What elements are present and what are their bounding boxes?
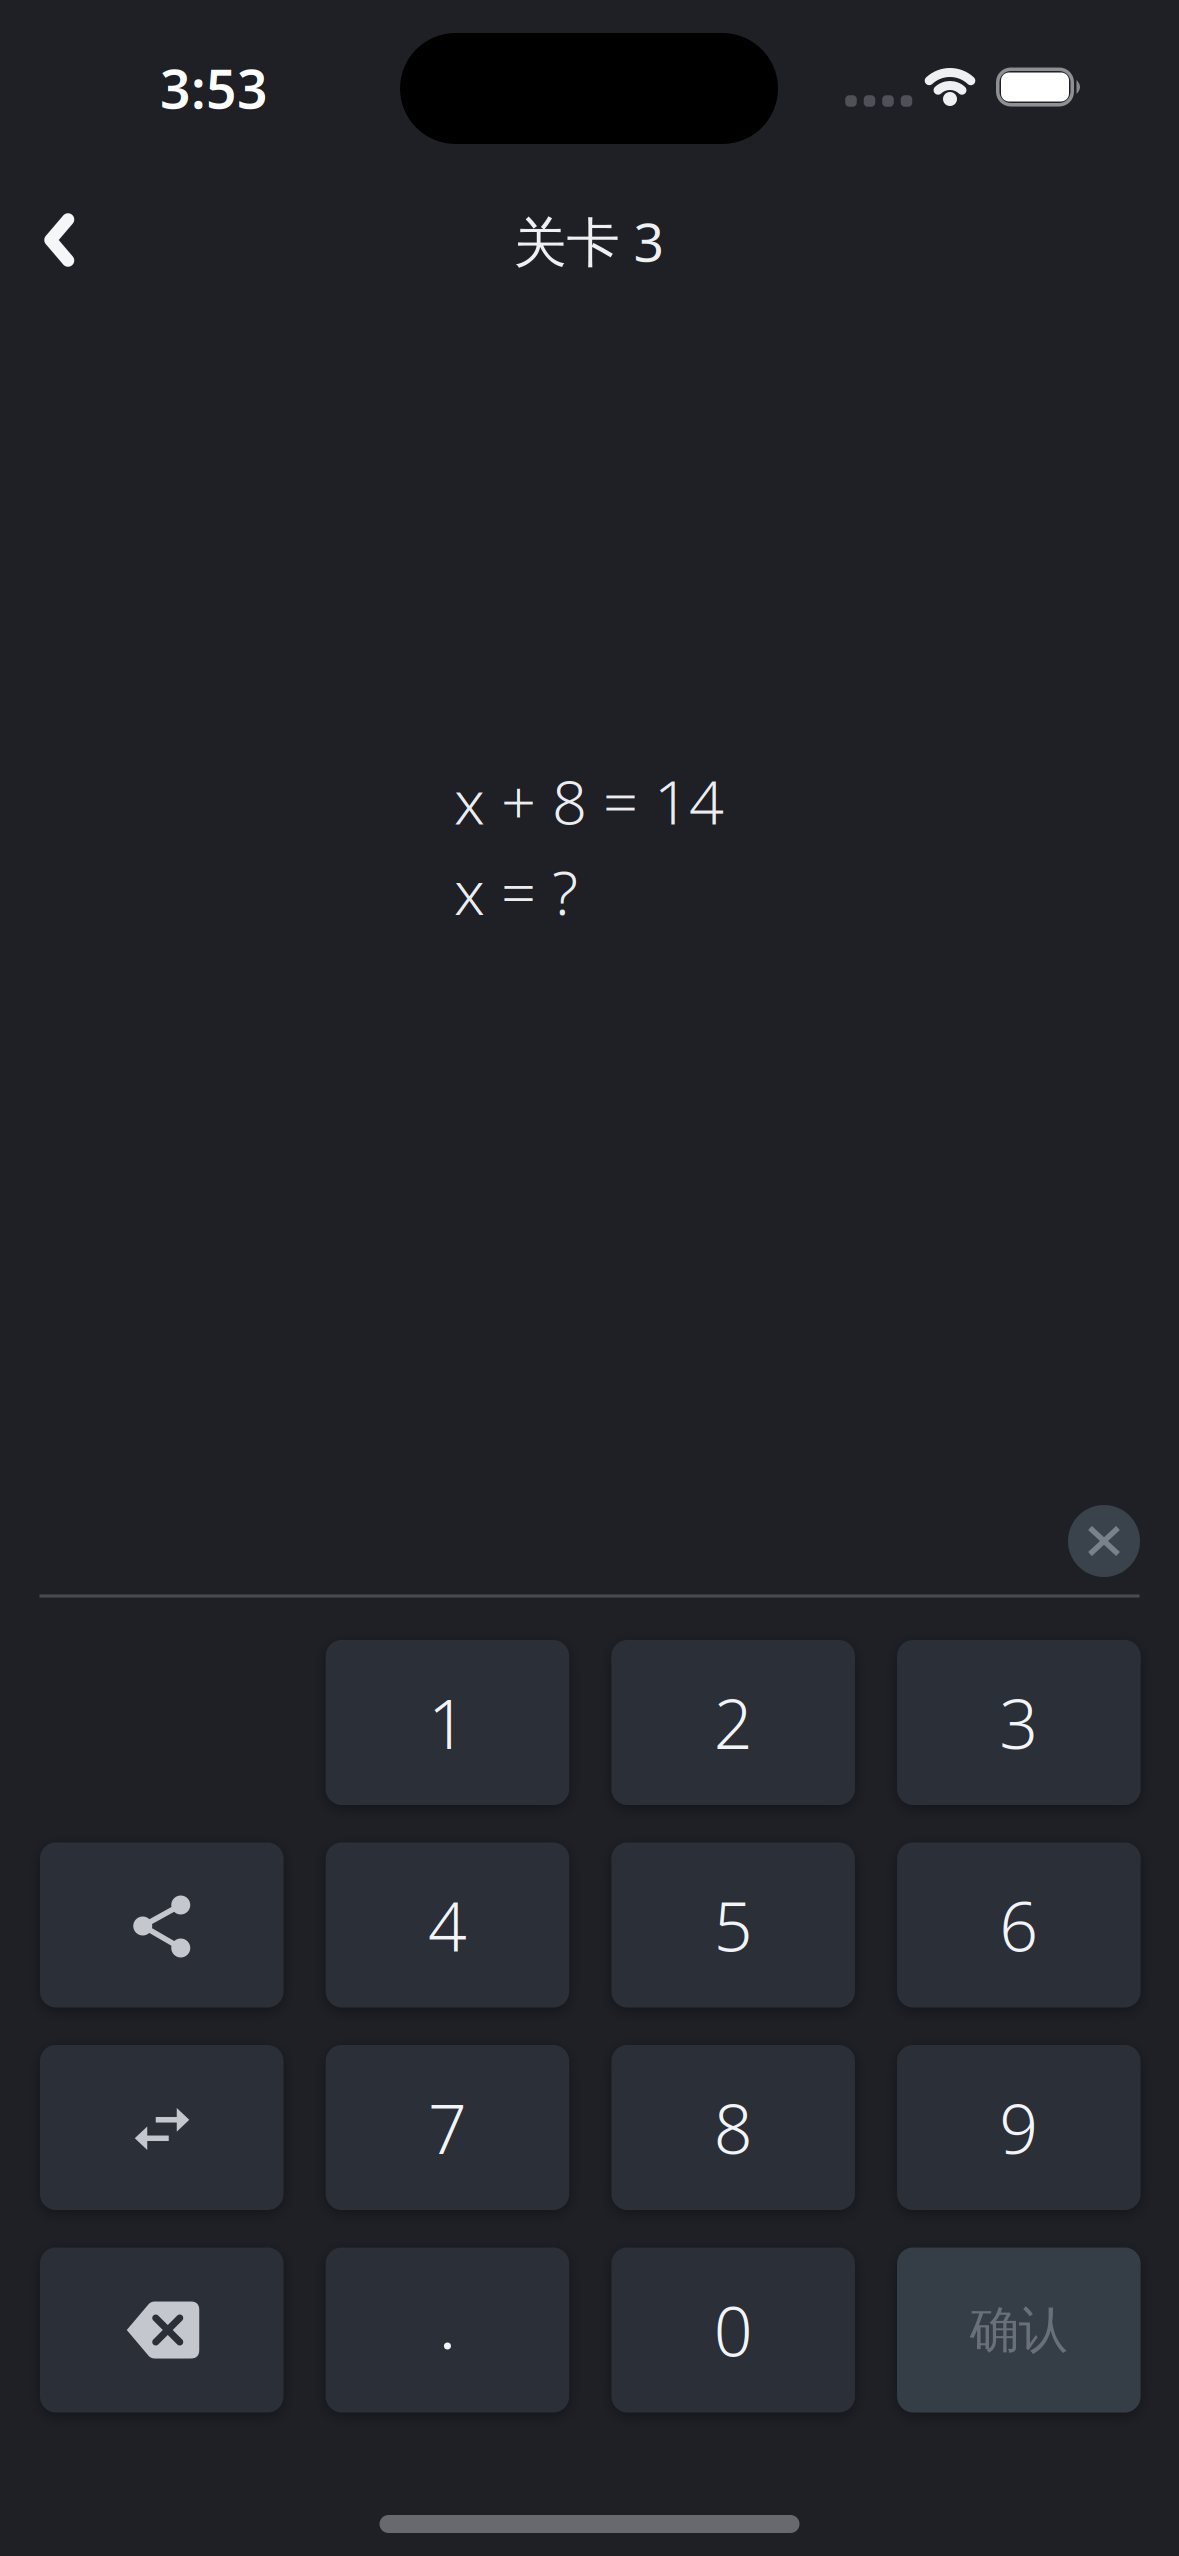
- staticText: 确认: [970, 2300, 1068, 2360]
- button[interactable]: 0: [611, 2247, 855, 2412]
- staticText: 1: [428, 1677, 467, 1768]
- button[interactable]: Back: [39, 213, 79, 267]
- button[interactable]: Swap: [40, 2045, 283, 2210]
- staticText: 关卡 3: [513, 206, 664, 276]
- staticText: 6: [999, 1880, 1038, 1970]
- staticText: 3: [999, 1677, 1038, 1768]
- button[interactable]: 7: [326, 2045, 569, 2210]
- button[interactable]: 4: [326, 1842, 569, 2007]
- button[interactable]: 确认: [897, 2247, 1141, 2412]
- button[interactable]: 1: [326, 1640, 569, 1805]
- staticText: 5: [714, 1880, 753, 1970]
- button[interactable]: Backspace: [40, 2247, 283, 2412]
- button[interactable]: 3: [897, 1640, 1141, 1805]
- button[interactable]: 2: [611, 1640, 855, 1805]
- staticText: x + 8 = 14: [454, 760, 724, 841]
- staticText: 3:53: [160, 53, 268, 123]
- staticText: 8: [714, 2082, 753, 2173]
- staticText: 7: [428, 2082, 467, 2173]
- button[interactable]: 6: [897, 1842, 1141, 2007]
- button[interactable]: Share: [40, 1842, 283, 2007]
- staticText: 9: [999, 2082, 1038, 2173]
- button[interactable]: 9: [897, 2045, 1141, 2210]
- staticText: x = ?: [454, 850, 578, 932]
- button[interactable]: 8: [611, 2045, 855, 2210]
- staticText: 0: [714, 2285, 753, 2375]
- staticText: 4: [428, 1880, 467, 1970]
- button[interactable]: 5: [611, 1842, 855, 2007]
- staticText: 2: [714, 1677, 753, 1768]
- button[interactable]: Decimal point: [326, 2247, 569, 2412]
- button[interactable]: Clear: [1068, 1505, 1140, 1577]
